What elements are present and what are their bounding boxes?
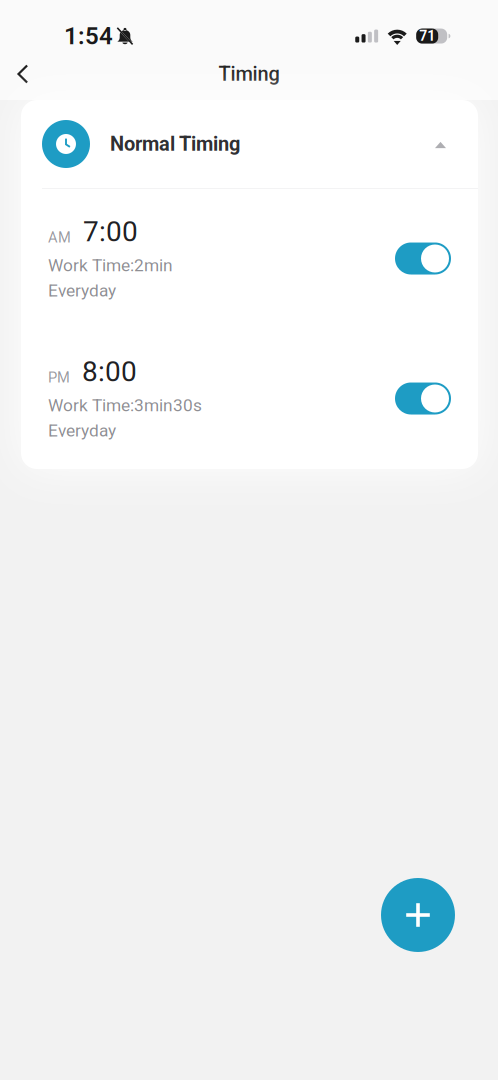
staticText: 8:00: [82, 355, 137, 388]
staticText: Work Time:3min30s: [48, 395, 202, 415]
button[interactable]: Add timer: [381, 878, 455, 952]
staticText: 7:00: [83, 215, 138, 248]
button[interactable]: Normal Timing: [21, 100, 478, 188]
staticText: Timing: [218, 62, 279, 86]
staticText: Work Time:2min: [48, 255, 173, 275]
staticText: 71: [419, 28, 435, 44]
button[interactable]: Back: [2, 52, 44, 104]
staticText: PM: [48, 369, 70, 386]
staticText: 1:54: [64, 22, 113, 50]
staticText: Normal Timing: [110, 132, 240, 156]
staticText: Everyday: [48, 420, 116, 441]
staticText: Everyday: [48, 280, 116, 301]
button[interactable]: AM: [21, 189, 478, 324]
button[interactable]: PM: [21, 324, 478, 469]
staticText: AM: [48, 229, 71, 246]
